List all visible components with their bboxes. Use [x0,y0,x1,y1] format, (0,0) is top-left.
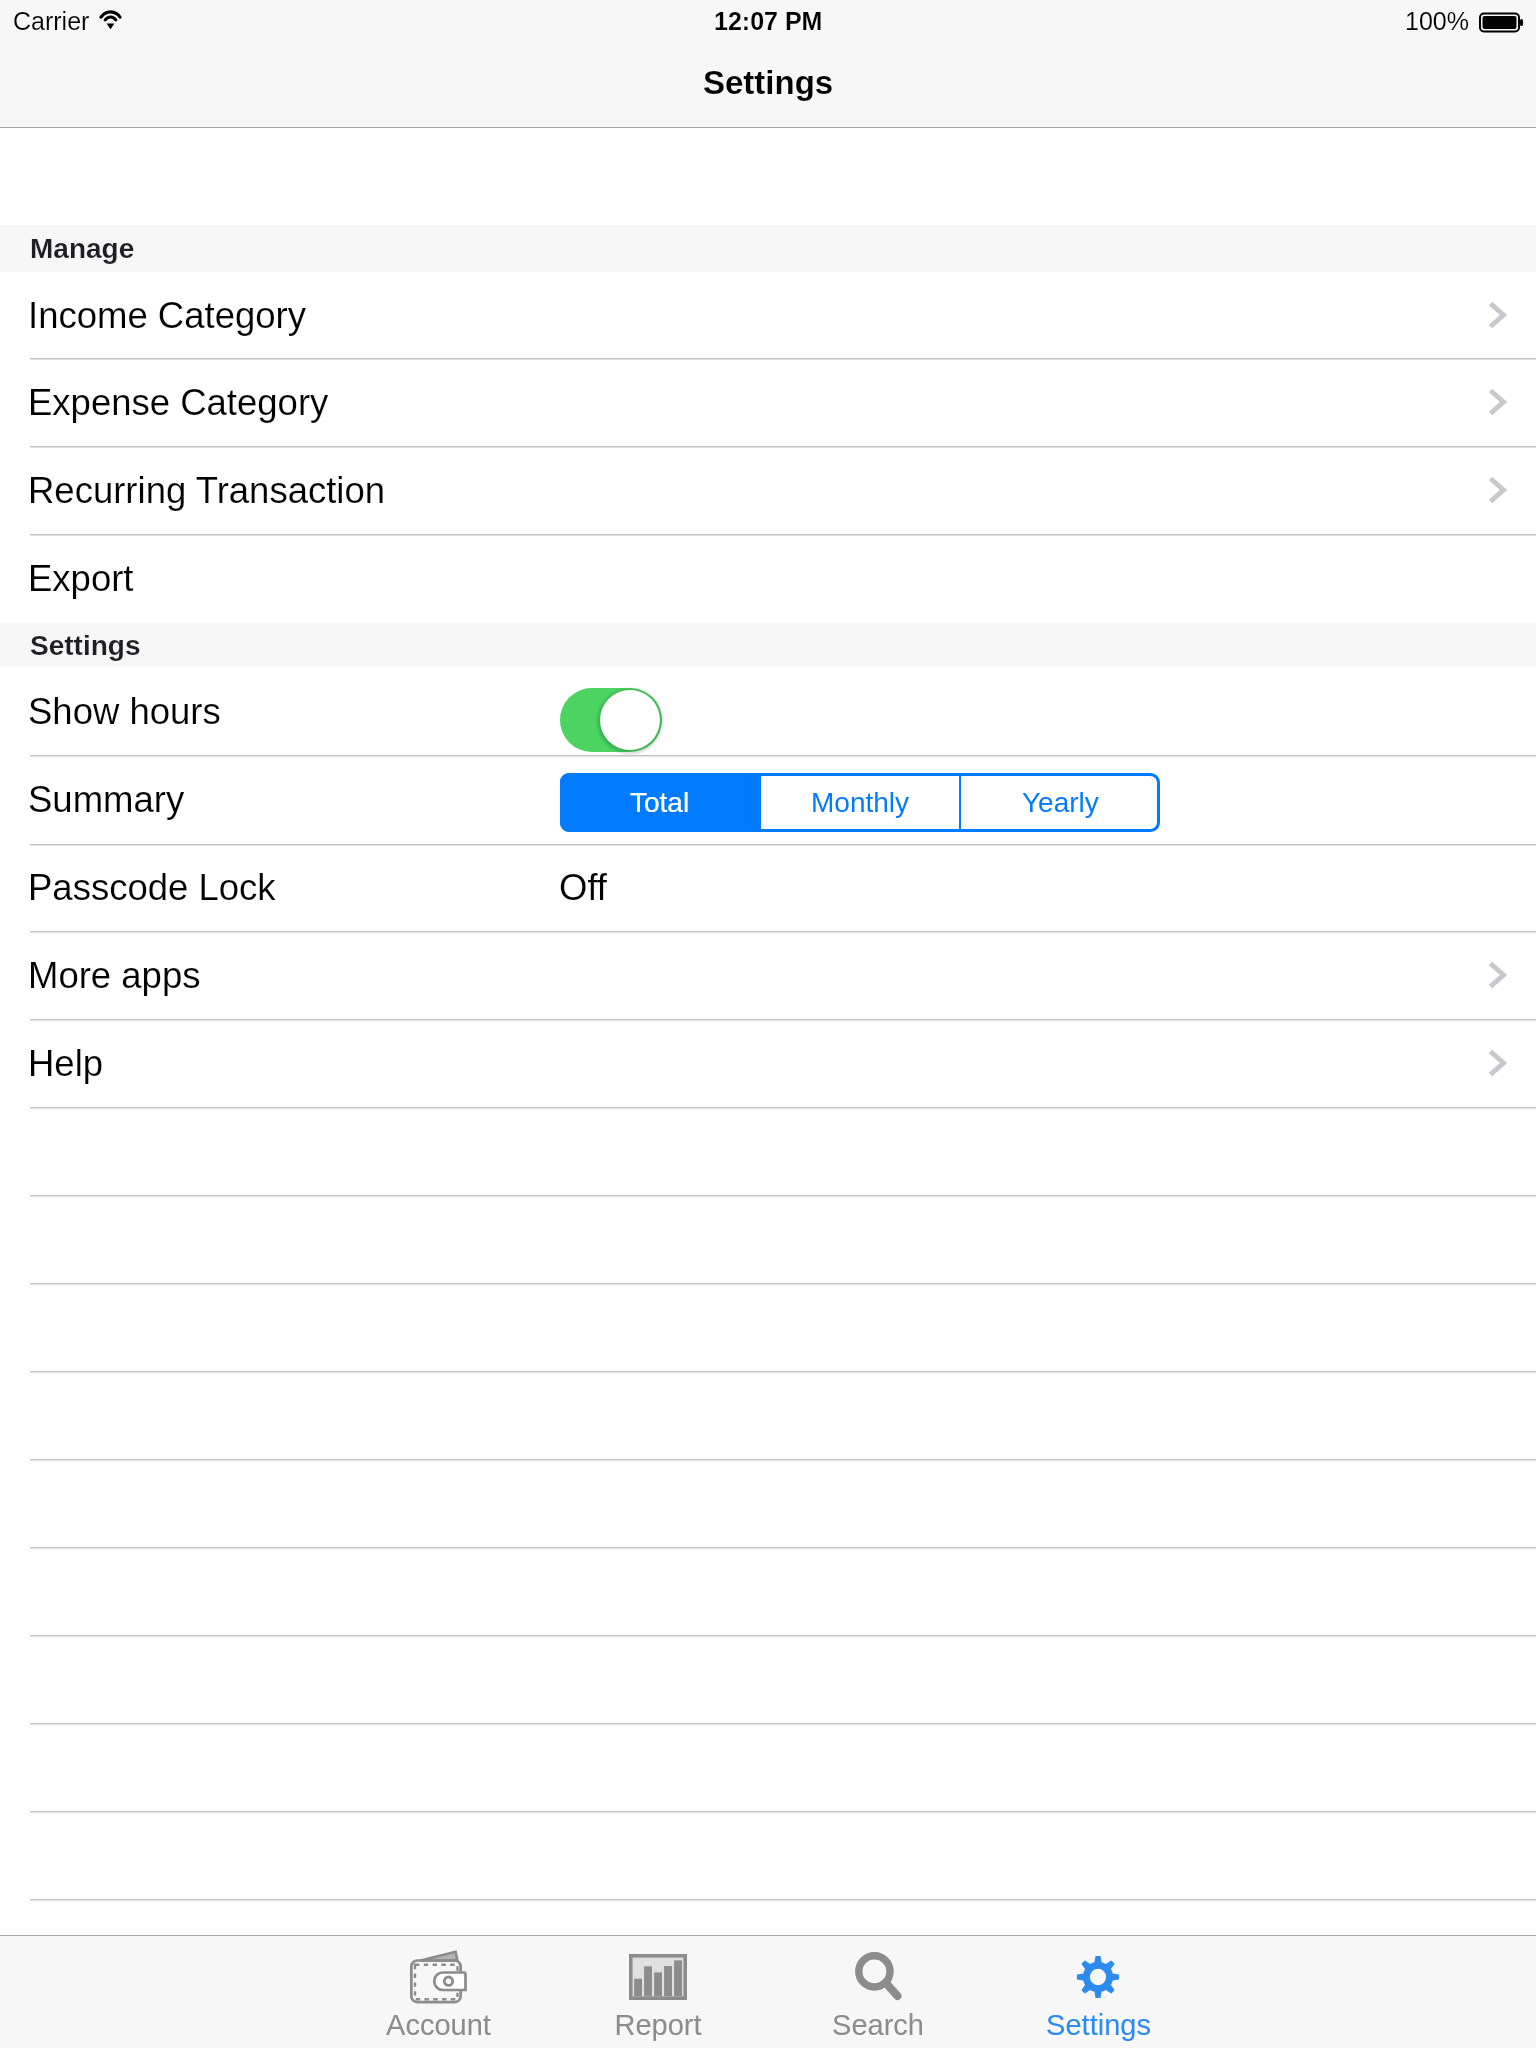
button[interactable]: Total [560,773,760,832]
staticText: Carrier [13,7,90,35]
button[interactable]: Income Category [0,272,1536,358]
staticText: Search [832,2009,924,2041]
staticText: Total [630,787,690,818]
staticText: Show hours [28,691,221,732]
staticText: Settings [30,630,141,661]
staticText: Income Category [28,295,306,336]
staticText: 100% [1405,7,1469,35]
button[interactable]: Search [768,1935,988,2048]
button[interactable]: Passcode Lock [0,844,1536,931]
staticText: Account [386,2009,491,2041]
staticText: Off [559,867,608,908]
staticText: More apps [28,955,201,996]
staticText: Expense Category [28,382,329,423]
button[interactable]: Expense Category [0,358,1536,446]
staticText: Settings [703,64,834,101]
button[interactable]: More apps [0,931,1536,1019]
button[interactable]: Report [548,1935,768,2048]
staticText: Help [28,1043,104,1084]
staticText: Recurring Transaction [28,470,386,511]
staticText: Monthly [811,787,910,818]
staticText: Summary [28,779,185,820]
button[interactable]: Account [328,1935,548,2048]
staticText: Export [28,558,134,599]
staticText: 12:07 PM [714,7,823,35]
staticText: Passcode Lock [28,867,276,908]
button[interactable]: Export [0,534,1536,623]
staticText: Yearly [1022,787,1099,818]
button[interactable]: Show hours [0,667,1536,755]
button[interactable]: Help [0,1019,1536,1107]
button[interactable]: Summary [0,755,1536,844]
button[interactable]: Recurring Transaction [0,446,1536,534]
staticText: Report [614,2009,702,2041]
button[interactable]: Show hours toggle, on [560,688,662,752]
button[interactable]: Settings [988,1935,1208,2048]
staticText: Settings [1046,2009,1151,2041]
staticText: Manage [30,233,135,264]
button[interactable]: Yearly [960,773,1160,832]
button[interactable]: Monthly [760,773,960,832]
